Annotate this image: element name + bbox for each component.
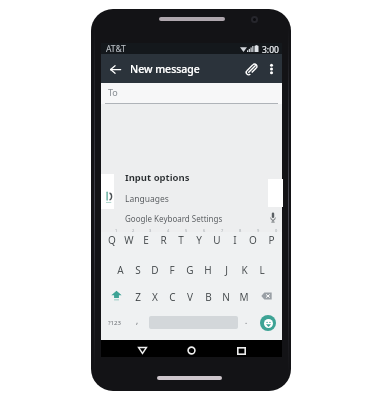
button[interactable]: T	[172, 228, 190, 255]
staticText: H	[204, 263, 212, 277]
staticText: D	[151, 263, 159, 277]
staticText: 3:00	[262, 44, 279, 55]
button[interactable]: Q	[103, 228, 120, 255]
button[interactable]: More options	[263, 61, 279, 77]
staticText: C	[169, 290, 176, 304]
button[interactable]: D	[146, 255, 163, 282]
button[interactable]: Z	[129, 282, 146, 309]
button[interactable]: Backspace	[253, 282, 280, 309]
staticText: Y	[196, 233, 202, 247]
staticText: E	[143, 233, 149, 247]
staticText: Input options	[125, 171, 190, 184]
button[interactable]: Back	[107, 61, 123, 77]
button[interactable]: ?123	[103, 309, 125, 336]
button[interactable]: I	[226, 228, 244, 255]
button[interactable]: U	[208, 228, 226, 255]
button[interactable]: Shift	[103, 282, 129, 309]
staticText: B	[205, 290, 212, 304]
staticText: I	[233, 233, 237, 247]
button[interactable]: S	[129, 255, 146, 282]
button[interactable]: Emoji	[260, 315, 276, 331]
button[interactable]: Languages	[101, 189, 282, 208]
button[interactable]: Home	[183, 342, 200, 359]
button[interactable]: C	[163, 282, 181, 309]
button[interactable]: W	[120, 228, 137, 255]
staticText: F	[169, 263, 175, 277]
staticText: W	[124, 233, 134, 247]
staticText: 9	[257, 228, 260, 233]
button[interactable]: L	[253, 255, 271, 282]
staticText: L	[259, 263, 265, 277]
staticText: S	[135, 263, 141, 277]
staticText: ?123	[108, 319, 121, 327]
staticText: AT&T	[106, 43, 126, 54]
button[interactable]: B	[199, 282, 217, 309]
button[interactable]: Google Keyboard Settings	[101, 209, 282, 228]
staticText: .	[245, 315, 248, 326]
button[interactable]: J	[217, 255, 235, 282]
button[interactable]: Input options	[101, 168, 282, 187]
button[interactable]: E	[137, 228, 154, 255]
button[interactable]: .	[238, 309, 255, 336]
staticText: X	[152, 290, 158, 304]
button[interactable]: Y	[190, 228, 208, 255]
staticText: M	[239, 290, 249, 304]
button[interactable]: V	[181, 282, 199, 309]
staticText: 1	[115, 228, 118, 233]
staticText: U	[213, 233, 221, 247]
button[interactable]: X	[146, 282, 163, 309]
staticText: G	[186, 263, 194, 277]
staticText: O	[249, 233, 257, 247]
staticText: P	[268, 233, 275, 247]
button[interactable]: R	[154, 228, 172, 255]
staticText: 3	[149, 228, 152, 233]
staticText: 5	[185, 228, 188, 233]
staticText: Z	[135, 290, 141, 304]
staticText: 8	[239, 228, 242, 233]
staticText: R	[160, 233, 167, 247]
staticText: 0	[275, 228, 278, 233]
button[interactable]: P	[262, 228, 280, 255]
staticText: K	[241, 263, 248, 277]
staticText: Google Keyboard Settings	[125, 213, 223, 224]
button[interactable]: N	[217, 282, 235, 309]
button[interactable]: Attach file	[242, 61, 260, 79]
staticText: 2	[132, 228, 135, 233]
staticText: New message	[130, 62, 200, 76]
staticText: 6	[203, 228, 206, 233]
staticText: Languages	[125, 193, 169, 205]
button[interactable]: F	[163, 255, 181, 282]
staticText: J	[225, 263, 228, 277]
button[interactable]: H	[199, 255, 217, 282]
button[interactable]: K	[235, 255, 253, 282]
staticText: Q	[108, 233, 116, 247]
button[interactable]: A	[112, 255, 129, 282]
button[interactable]: O	[244, 228, 262, 255]
staticText: N	[222, 290, 230, 304]
button[interactable]: M	[235, 282, 253, 309]
button[interactable]: Recent apps	[233, 342, 250, 359]
button[interactable]: Back	[134, 342, 151, 359]
staticText: ,	[136, 315, 139, 326]
staticText: 4	[167, 228, 170, 233]
staticText: A	[117, 263, 124, 277]
staticText: T	[178, 233, 184, 247]
button[interactable]: ,	[125, 309, 149, 336]
button[interactable]: G	[181, 255, 199, 282]
staticText: 7	[221, 228, 224, 233]
staticText: To	[108, 86, 118, 98]
staticText: V	[187, 290, 193, 304]
